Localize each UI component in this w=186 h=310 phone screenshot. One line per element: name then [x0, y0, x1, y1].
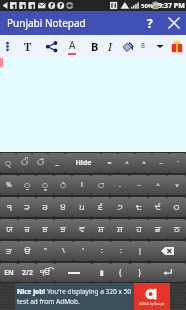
staticText: " [44, 246, 47, 256]
button[interactable] [55, 263, 92, 282]
button[interactable]: ਯ [0, 219, 18, 239]
button[interactable]: 2/2 [18, 263, 36, 282]
button[interactable]: Text style [18, 35, 38, 57]
staticText: v [175, 181, 179, 189]
staticText: ਸ਼ [98, 225, 104, 234]
button[interactable]: = [101, 153, 118, 173]
staticText: ਯ [6, 225, 13, 234]
button[interactable]: Font size [136, 35, 150, 57]
button[interactable]: EN [0, 263, 18, 282]
button[interactable]: : [111, 241, 130, 261]
button[interactable]: % [0, 175, 18, 195]
button[interactable]: ) [130, 263, 149, 282]
button[interactable]: Bold [86, 35, 104, 57]
button[interactable]: ' [73, 241, 92, 261]
button[interactable]: _ [48, 153, 65, 173]
button[interactable]: ( [111, 263, 130, 282]
staticText: ੑ [5, 160, 11, 167]
button[interactable]: ▮ [92, 263, 111, 282]
button[interactable]: ਝ [54, 219, 72, 239]
staticText: ਝ [42, 225, 48, 234]
button[interactable]: Highlight color [119, 35, 137, 57]
staticText: _ [55, 158, 59, 168]
staticText: ੬ [98, 203, 103, 212]
button[interactable]: ੳ [18, 241, 36, 261]
staticText: ^ [125, 159, 129, 167]
button[interactable]: ਵ [72, 219, 91, 239]
staticText: Nice job! [17, 287, 47, 296]
button[interactable]: ੮ [129, 197, 148, 217]
staticText: = [107, 158, 112, 168]
button[interactable]: ੬ [91, 197, 110, 217]
button[interactable]: ੦ [167, 197, 186, 217]
button[interactable]: ੭ [110, 197, 129, 217]
button[interactable]: ੱ [32, 153, 48, 173]
button[interactable]: ਠ [167, 219, 186, 239]
staticText: ੴ [40, 268, 51, 277]
button[interactable]: : [92, 241, 111, 261]
staticText: 50% [141, 2, 154, 10]
button[interactable]: Gift [168, 35, 186, 57]
staticText: \ [62, 246, 65, 256]
staticText: ੪ [60, 203, 66, 212]
button[interactable]: Help [138, 11, 162, 35]
button[interactable]: ਡ [148, 219, 167, 239]
button[interactable]: ੁ [18, 175, 36, 195]
button[interactable]: ਝ [36, 219, 54, 239]
staticText: ੁ [24, 182, 30, 189]
button[interactable]: ` [169, 153, 186, 173]
button[interactable]: Font size dropdown [153, 35, 167, 57]
button[interactable]: ^ [148, 175, 167, 195]
button[interactable]: Hide [65, 153, 101, 173]
button[interactable]: ੧ [0, 197, 18, 217]
button[interactable]: ਸ਼ [110, 219, 129, 239]
button[interactable]: More options [0, 35, 16, 57]
button[interactable]: ੩ [36, 197, 54, 217]
button[interactable]: ^ [118, 153, 135, 173]
button[interactable]: Text color [62, 35, 82, 57]
staticText: ਠ [174, 225, 180, 234]
staticText: I [108, 39, 113, 54]
button[interactable]: Close [162, 11, 186, 35]
button[interactable]: ੑ [0, 153, 16, 173]
staticText: ( [119, 267, 122, 278]
staticText: ੦ [173, 203, 180, 212]
button[interactable]: . [110, 175, 129, 195]
button[interactable]: ੯ [148, 197, 167, 217]
button[interactable]: " [36, 241, 54, 261]
button[interactable] [149, 263, 186, 282]
button[interactable]: Nice job! [15, 283, 170, 310]
staticText: 9:37 PM [158, 1, 185, 11]
button[interactable] [149, 241, 186, 261]
button[interactable]: Share [41, 35, 61, 57]
button[interactable]: ੇ [54, 175, 72, 195]
button[interactable]: \ [54, 241, 73, 261]
staticText: | [138, 246, 142, 256]
button[interactable]: ! [72, 175, 91, 195]
button[interactable]: ~ [129, 175, 148, 195]
button[interactable]: ਹ [129, 219, 148, 239]
staticText: ੫ [79, 203, 85, 212]
button[interactable]: | [130, 241, 149, 261]
staticText: ) [138, 267, 141, 278]
staticText: EN [4, 268, 14, 278]
staticText: ^ [142, 159, 146, 167]
button[interactable]: ੜ [0, 241, 18, 261]
button[interactable]: ੨ [18, 197, 36, 217]
button[interactable]: ੫ [72, 197, 91, 217]
button[interactable]: ੰ [16, 153, 32, 173]
button[interactable]: ੪ [54, 197, 72, 217]
staticText: % [6, 180, 12, 190]
button[interactable]: v [167, 175, 186, 195]
button[interactable]: Italic [103, 35, 117, 57]
button[interactable]: ~ [152, 153, 169, 173]
staticText: ੰ [21, 159, 28, 167]
button[interactable]: ਂ [91, 175, 110, 195]
button[interactable]: ^ [135, 153, 152, 173]
staticText: ^ [156, 181, 160, 189]
button[interactable]: ਸ਼ [91, 219, 110, 239]
staticText: test ad from AdMob. [17, 297, 80, 306]
button[interactable]: ੴ [36, 263, 55, 282]
button[interactable]: ੂ [36, 175, 54, 195]
button[interactable]: ਰ [18, 219, 36, 239]
